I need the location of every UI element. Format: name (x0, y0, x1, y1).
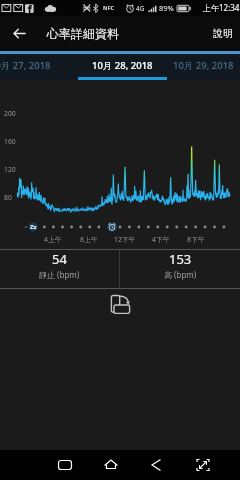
staticText: 160 (4, 137, 16, 146)
staticText: Zz (30, 223, 37, 231)
button[interactable]: Recent apps (50, 450, 80, 480)
staticText: 8上午 (80, 235, 98, 244)
staticText: 4G (136, 4, 145, 13)
staticText: 說明 (213, 27, 233, 40)
staticText: 上午12:34 (203, 2, 240, 13)
staticText: 10月 28, 2018 (92, 59, 153, 72)
staticText: 12下午 (114, 235, 136, 244)
button[interactable]: 說明 (202, 16, 240, 51)
staticText: 120 (4, 165, 16, 174)
button[interactable]: 153 (120, 250, 240, 280)
staticText: 4上午 (44, 235, 62, 244)
staticText: 心率詳細資料 (47, 26, 119, 41)
button[interactable]: Back (142, 450, 172, 480)
button[interactable]: Home (96, 450, 126, 480)
staticText: 89% (159, 3, 174, 13)
staticText: 靜止 (bpm) (39, 269, 80, 280)
staticText: 200 (4, 109, 16, 118)
staticText: 10月 27, 2018 (0, 59, 51, 72)
button[interactable]: Expand screen (188, 450, 218, 480)
staticText: NFC (103, 4, 115, 11)
button[interactable]: 10月 29, 2018 (173, 54, 209, 80)
staticText: 54 (52, 250, 67, 268)
button[interactable]: 10月 27, 2018 (0, 54, 71, 80)
staticText: 4下午 (152, 235, 170, 244)
staticText: 80 (4, 193, 12, 202)
button[interactable]: Share (107, 291, 133, 317)
button[interactable]: 54 (0, 250, 119, 280)
staticText: 10月 29, 2018 (173, 59, 209, 72)
button[interactable]: 10月 28, 2018 (71, 54, 173, 80)
staticText: 高 (bpm) (164, 269, 197, 280)
button[interactable]: Back (0, 16, 38, 51)
staticText: 153 (169, 250, 192, 268)
staticText: 8下午 (187, 235, 205, 244)
